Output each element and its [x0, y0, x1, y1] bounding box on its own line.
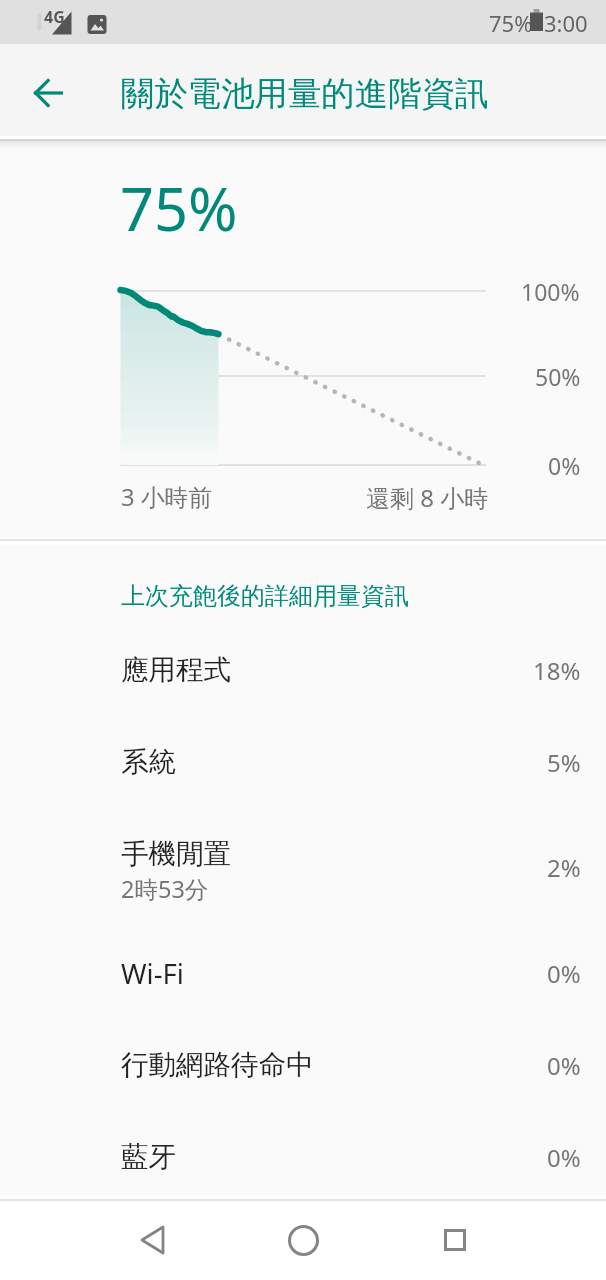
staticText: 藍牙	[121, 1140, 176, 1175]
staticText: 手機閒置	[121, 837, 231, 872]
button[interactable]: 行動網路待命中	[0, 1019, 606, 1111]
staticText: 還剩 8 小時	[366, 481, 489, 514]
button[interactable]: Home	[262, 1204, 344, 1276]
staticText: 0%	[548, 450, 581, 481]
staticText: Wi-Fi	[121, 955, 184, 992]
button[interactable]: 應用程式	[0, 624, 606, 716]
button[interactable]: Wi-Fi	[0, 927, 606, 1019]
staticText: 75%	[489, 8, 533, 38]
staticText: 100%	[521, 276, 580, 307]
staticText: 75%	[120, 167, 238, 248]
staticText: 2%	[547, 851, 581, 884]
button[interactable]: Back	[111, 1204, 193, 1276]
staticText: 18%	[533, 654, 581, 687]
staticText: 0%	[547, 1049, 581, 1082]
staticText: 應用程式	[121, 653, 231, 688]
staticText: 0%	[547, 957, 581, 990]
button[interactable]: 藍牙	[0, 1111, 606, 1203]
button[interactable]: Back	[14, 59, 82, 127]
staticText: 5%	[547, 746, 581, 779]
button[interactable]: 手機閒置	[0, 808, 606, 927]
staticText: 50%	[535, 361, 581, 392]
staticText: 2時53分	[121, 873, 209, 905]
staticText: 行動網路待命中	[121, 1048, 314, 1083]
staticText: 0%	[547, 1141, 581, 1174]
staticText: 3 小時前	[121, 481, 213, 514]
staticText: 關於電池用量的進階資訊	[121, 73, 489, 115]
button[interactable]: Recents	[414, 1204, 496, 1276]
button[interactable]: 系統	[0, 716, 606, 808]
staticText: 上次充飽後的詳細用量資訊	[121, 581, 409, 611]
staticText: 4G	[44, 6, 65, 28]
staticText: 3:00	[544, 8, 588, 38]
staticText: 系統	[121, 745, 176, 780]
